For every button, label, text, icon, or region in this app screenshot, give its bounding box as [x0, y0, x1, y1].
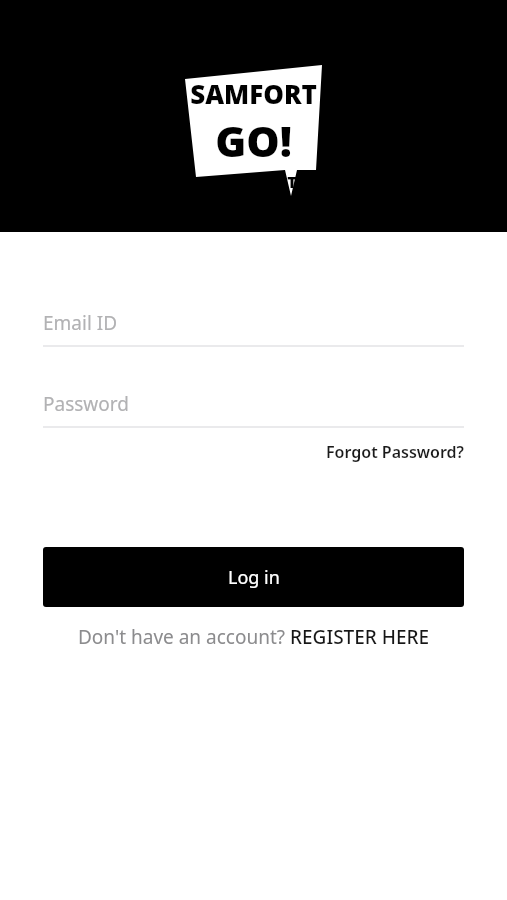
staticText: Don't have an account? [78, 624, 290, 650]
staticText: Email ID [43, 310, 118, 336]
other: Samfort Go! Merchants logo [185, 76, 322, 193]
staticText: SAMFORT [190, 76, 317, 111]
staticText: Forgot Password? [326, 441, 464, 463]
button[interactable]: Log in [43, 547, 464, 607]
staticText: MERCHANTS [201, 171, 307, 193]
button[interactable]: REGISTER HERE [290, 624, 430, 650]
button[interactable]: Password [43, 391, 464, 428]
button[interactable]: Email ID [43, 310, 464, 347]
staticText: GO! [215, 112, 292, 169]
button[interactable]: Forgot Password? [326, 439, 464, 465]
staticText: REGISTER HERE [290, 624, 430, 650]
staticText: Log in [228, 565, 280, 590]
staticText: Password [43, 391, 129, 417]
